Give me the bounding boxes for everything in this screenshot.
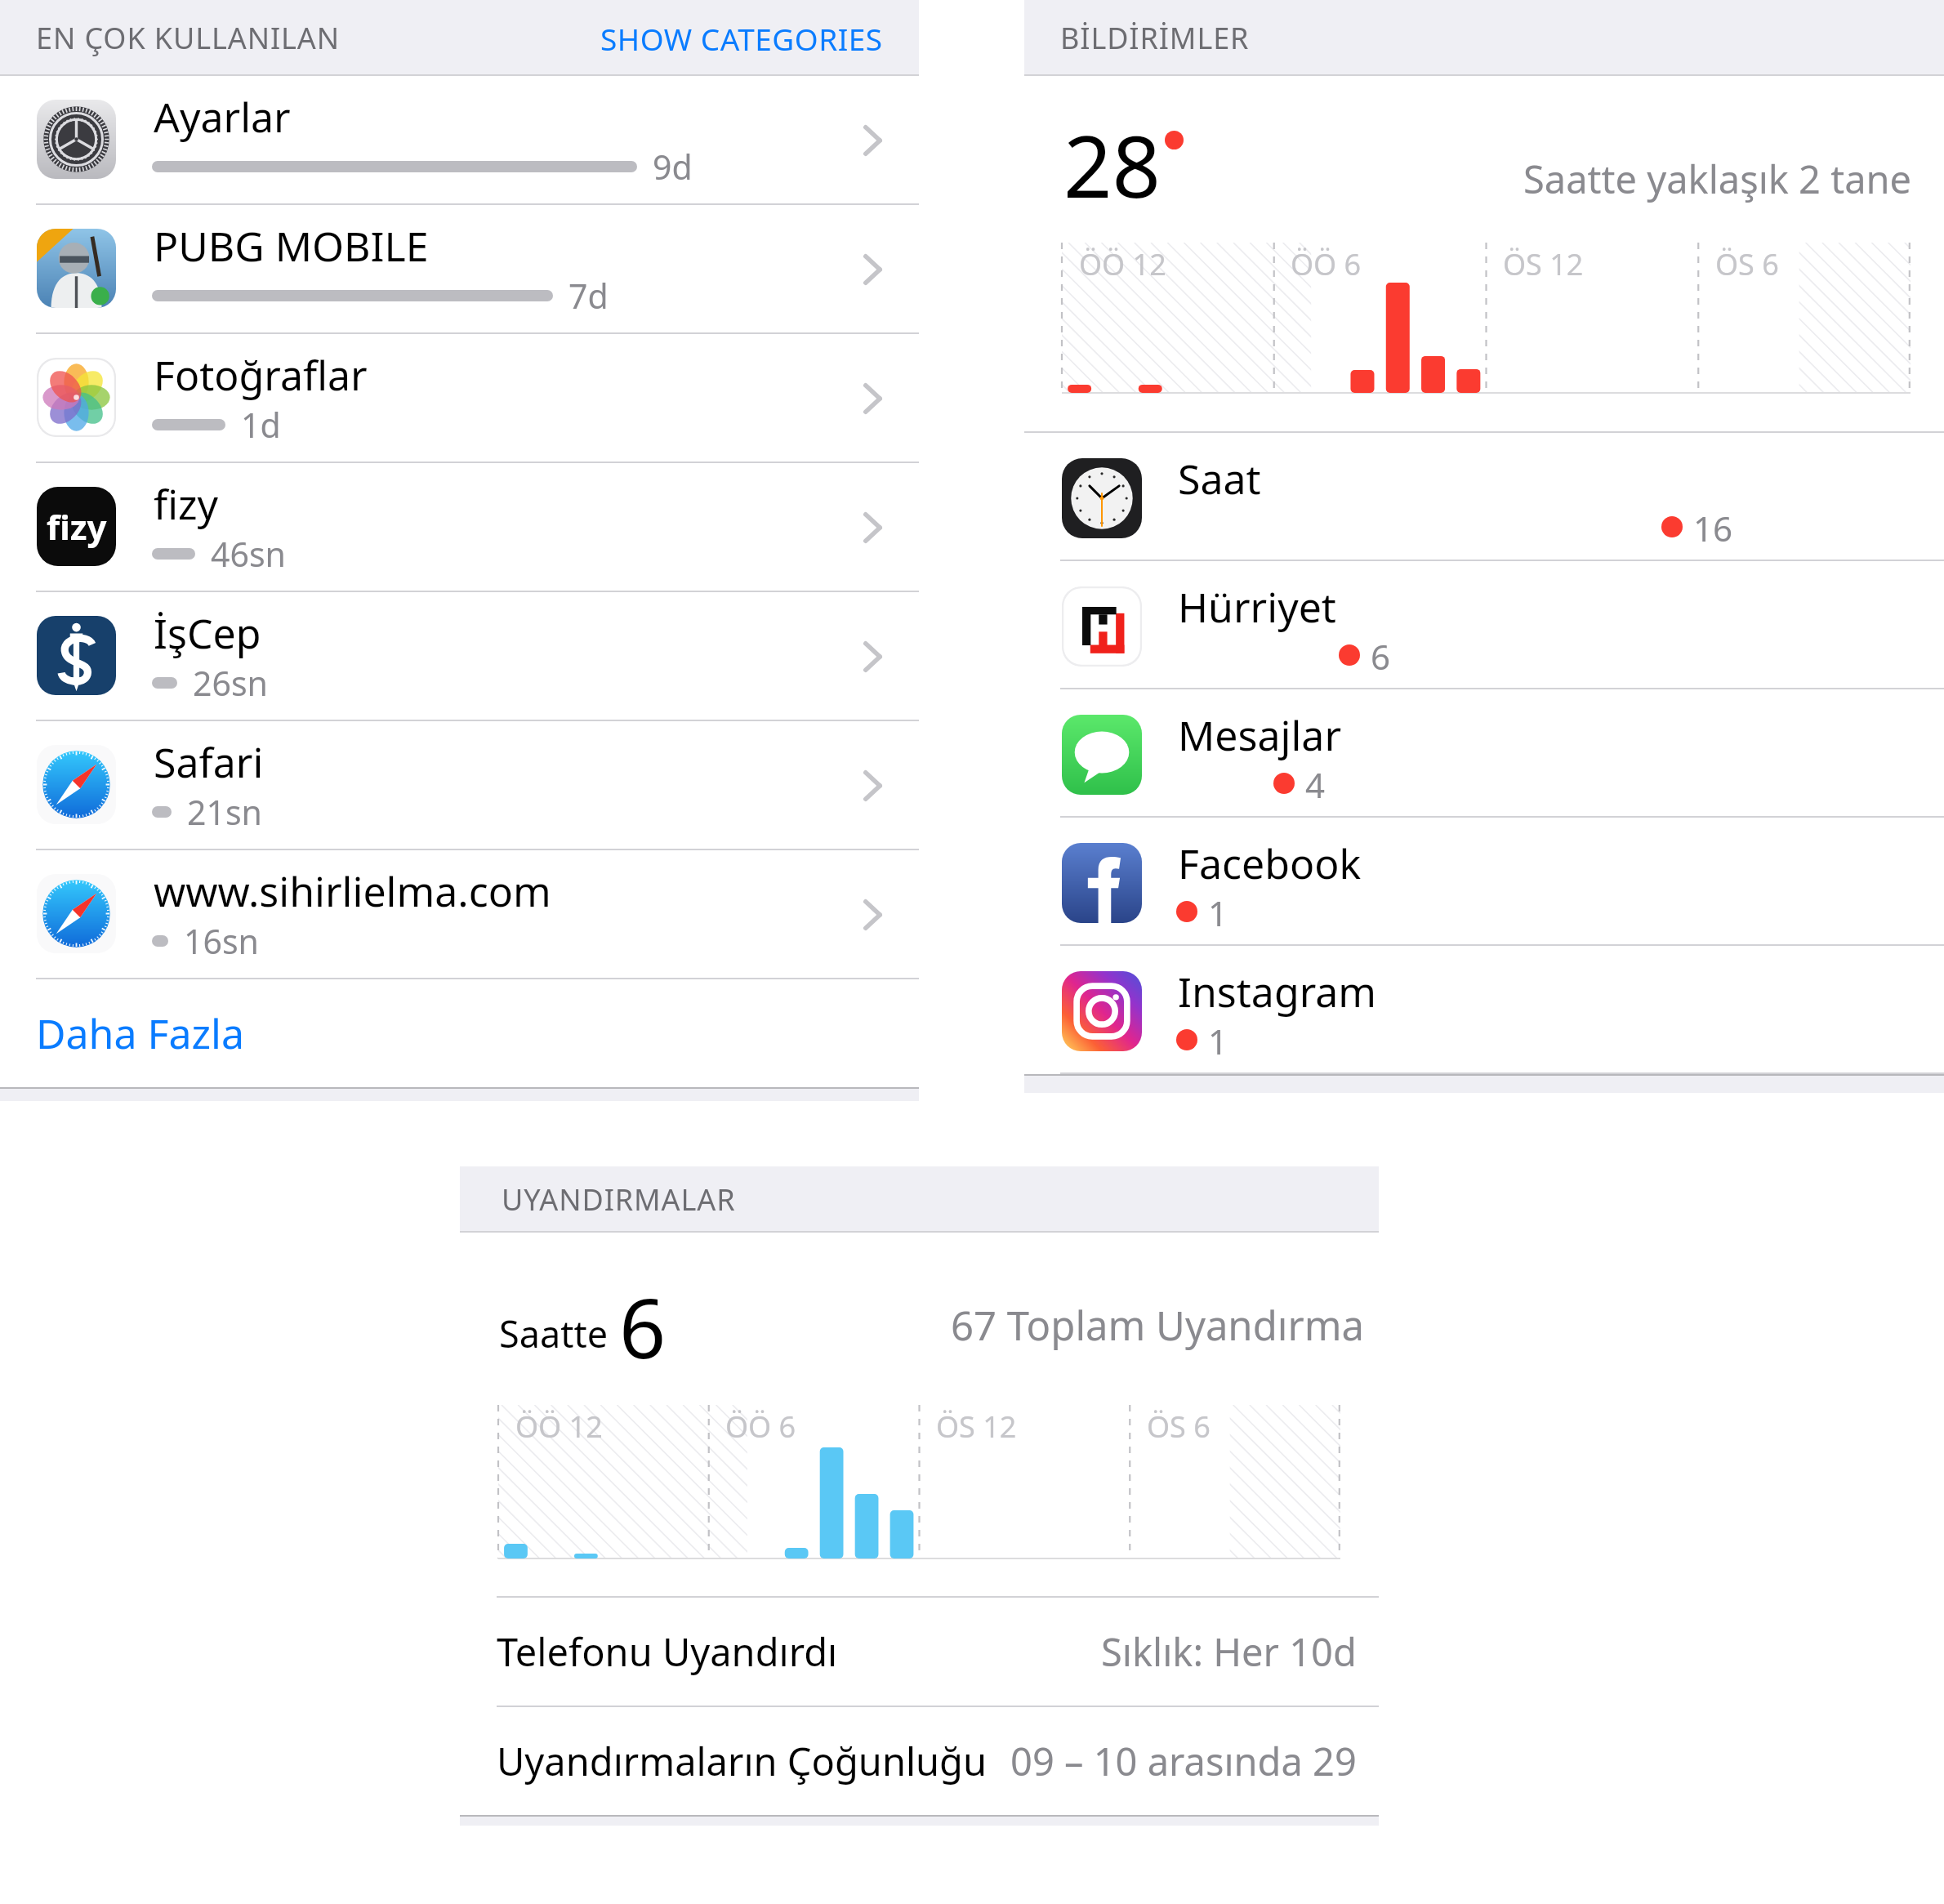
staticText: 28 — [1063, 107, 1161, 223]
button[interactable]: Mesajlar — [1024, 689, 1944, 818]
staticText: EN ÇOK KULLANILAN — [36, 18, 340, 58]
staticText: Facebook — [1178, 836, 1362, 891]
button[interactable]: Daha Fazla — [0, 979, 919, 1087]
staticText: 26sn — [193, 660, 268, 706]
staticText: 7d — [568, 273, 609, 319]
button[interactable]: Saat — [1024, 433, 1944, 561]
staticText: Telefonu Uyandırdı — [497, 1625, 838, 1678]
staticText: Hürriyet — [1178, 579, 1336, 635]
button[interactable]: SHOW CATEGORIES — [576, 10, 919, 67]
staticText: Mesajlar — [1178, 707, 1342, 763]
staticText: PUBG MOBILE — [154, 218, 429, 274]
staticText: 1d — [241, 402, 281, 448]
staticText: UYANDIRMALAR — [502, 1179, 736, 1220]
staticText: 46sn — [211, 531, 286, 577]
staticText: Instagram — [1178, 964, 1377, 1019]
staticText: fizy — [154, 476, 219, 532]
other: Open details — [863, 512, 882, 543]
staticText: www.sihirlielma.com — [154, 863, 551, 919]
staticText: ÖÖ 6 — [725, 1407, 796, 1447]
other: Open details — [863, 770, 882, 801]
staticText: BİLDİRİMLER — [1060, 18, 1250, 58]
button[interactable]: fizy — [0, 463, 919, 592]
button[interactable]: Instagram — [1024, 946, 1944, 1074]
button[interactable]: PUBG MOBILE — [0, 205, 919, 334]
staticText: Daha Fazla — [36, 1006, 244, 1061]
staticText: 67 Toplam Uyandırma — [951, 1298, 1364, 1353]
button[interactable]: Facebook — [1024, 818, 1944, 946]
staticText: 09 – 10 arasında 29 — [1010, 1735, 1357, 1787]
button[interactable]: Safari — [0, 721, 919, 850]
staticText: ÖÖ 12 — [1079, 244, 1166, 284]
other: Open details — [863, 641, 882, 672]
staticText: 16 — [1693, 505, 1733, 551]
button[interactable]: Fotoğraflar — [0, 334, 919, 463]
staticText: ÖS 6 — [1147, 1407, 1211, 1447]
button[interactable]: Hürriyet — [1024, 561, 1944, 689]
staticText: İşCep — [154, 605, 261, 661]
staticText: 1 — [1208, 890, 1228, 936]
button[interactable]: www.sihirlielma.com — [0, 850, 919, 979]
staticText: Safari — [154, 734, 264, 790]
staticText: Saat — [1178, 451, 1261, 506]
staticText: ÖS 12 — [1503, 244, 1584, 284]
staticText: 6 — [1371, 633, 1391, 680]
staticText: ÖÖ 6 — [1291, 244, 1362, 284]
button[interactable]: İşCep — [0, 592, 919, 721]
staticText: Sıklık: Her 10d — [1101, 1625, 1357, 1678]
staticText: ÖÖ 12 — [515, 1407, 603, 1447]
staticText: Saatte — [499, 1309, 609, 1358]
staticText: 16sn — [184, 918, 259, 964]
staticText: 6 — [619, 1271, 667, 1382]
staticText: 4 — [1305, 761, 1326, 808]
staticText: Ayarlar — [154, 89, 291, 145]
button[interactable]: Uyandırmaların Çoğunluğu — [460, 1707, 1379, 1815]
staticText: Saatte yaklaşık 2 tane — [1523, 153, 1912, 205]
staticText: SHOW CATEGORIES — [600, 18, 883, 59]
staticText: Uyandırmaların Çoğunluğu — [497, 1735, 988, 1787]
staticText: 1 — [1208, 1018, 1228, 1064]
staticText: 21sn — [187, 789, 262, 835]
staticText: ÖS 6 — [1715, 244, 1779, 284]
other: Open details — [863, 899, 882, 930]
staticText: Fotoğraflar — [154, 347, 368, 403]
staticText: 9d — [653, 144, 693, 190]
other: Open details — [863, 125, 882, 156]
other: Open details — [863, 254, 882, 285]
staticText: ÖS 12 — [936, 1407, 1017, 1447]
staticText: fizy — [47, 503, 107, 550]
button[interactable]: Ayarlar — [0, 76, 919, 205]
button[interactable]: Telefonu Uyandırdı — [460, 1598, 1379, 1706]
other: Open details — [863, 383, 882, 414]
